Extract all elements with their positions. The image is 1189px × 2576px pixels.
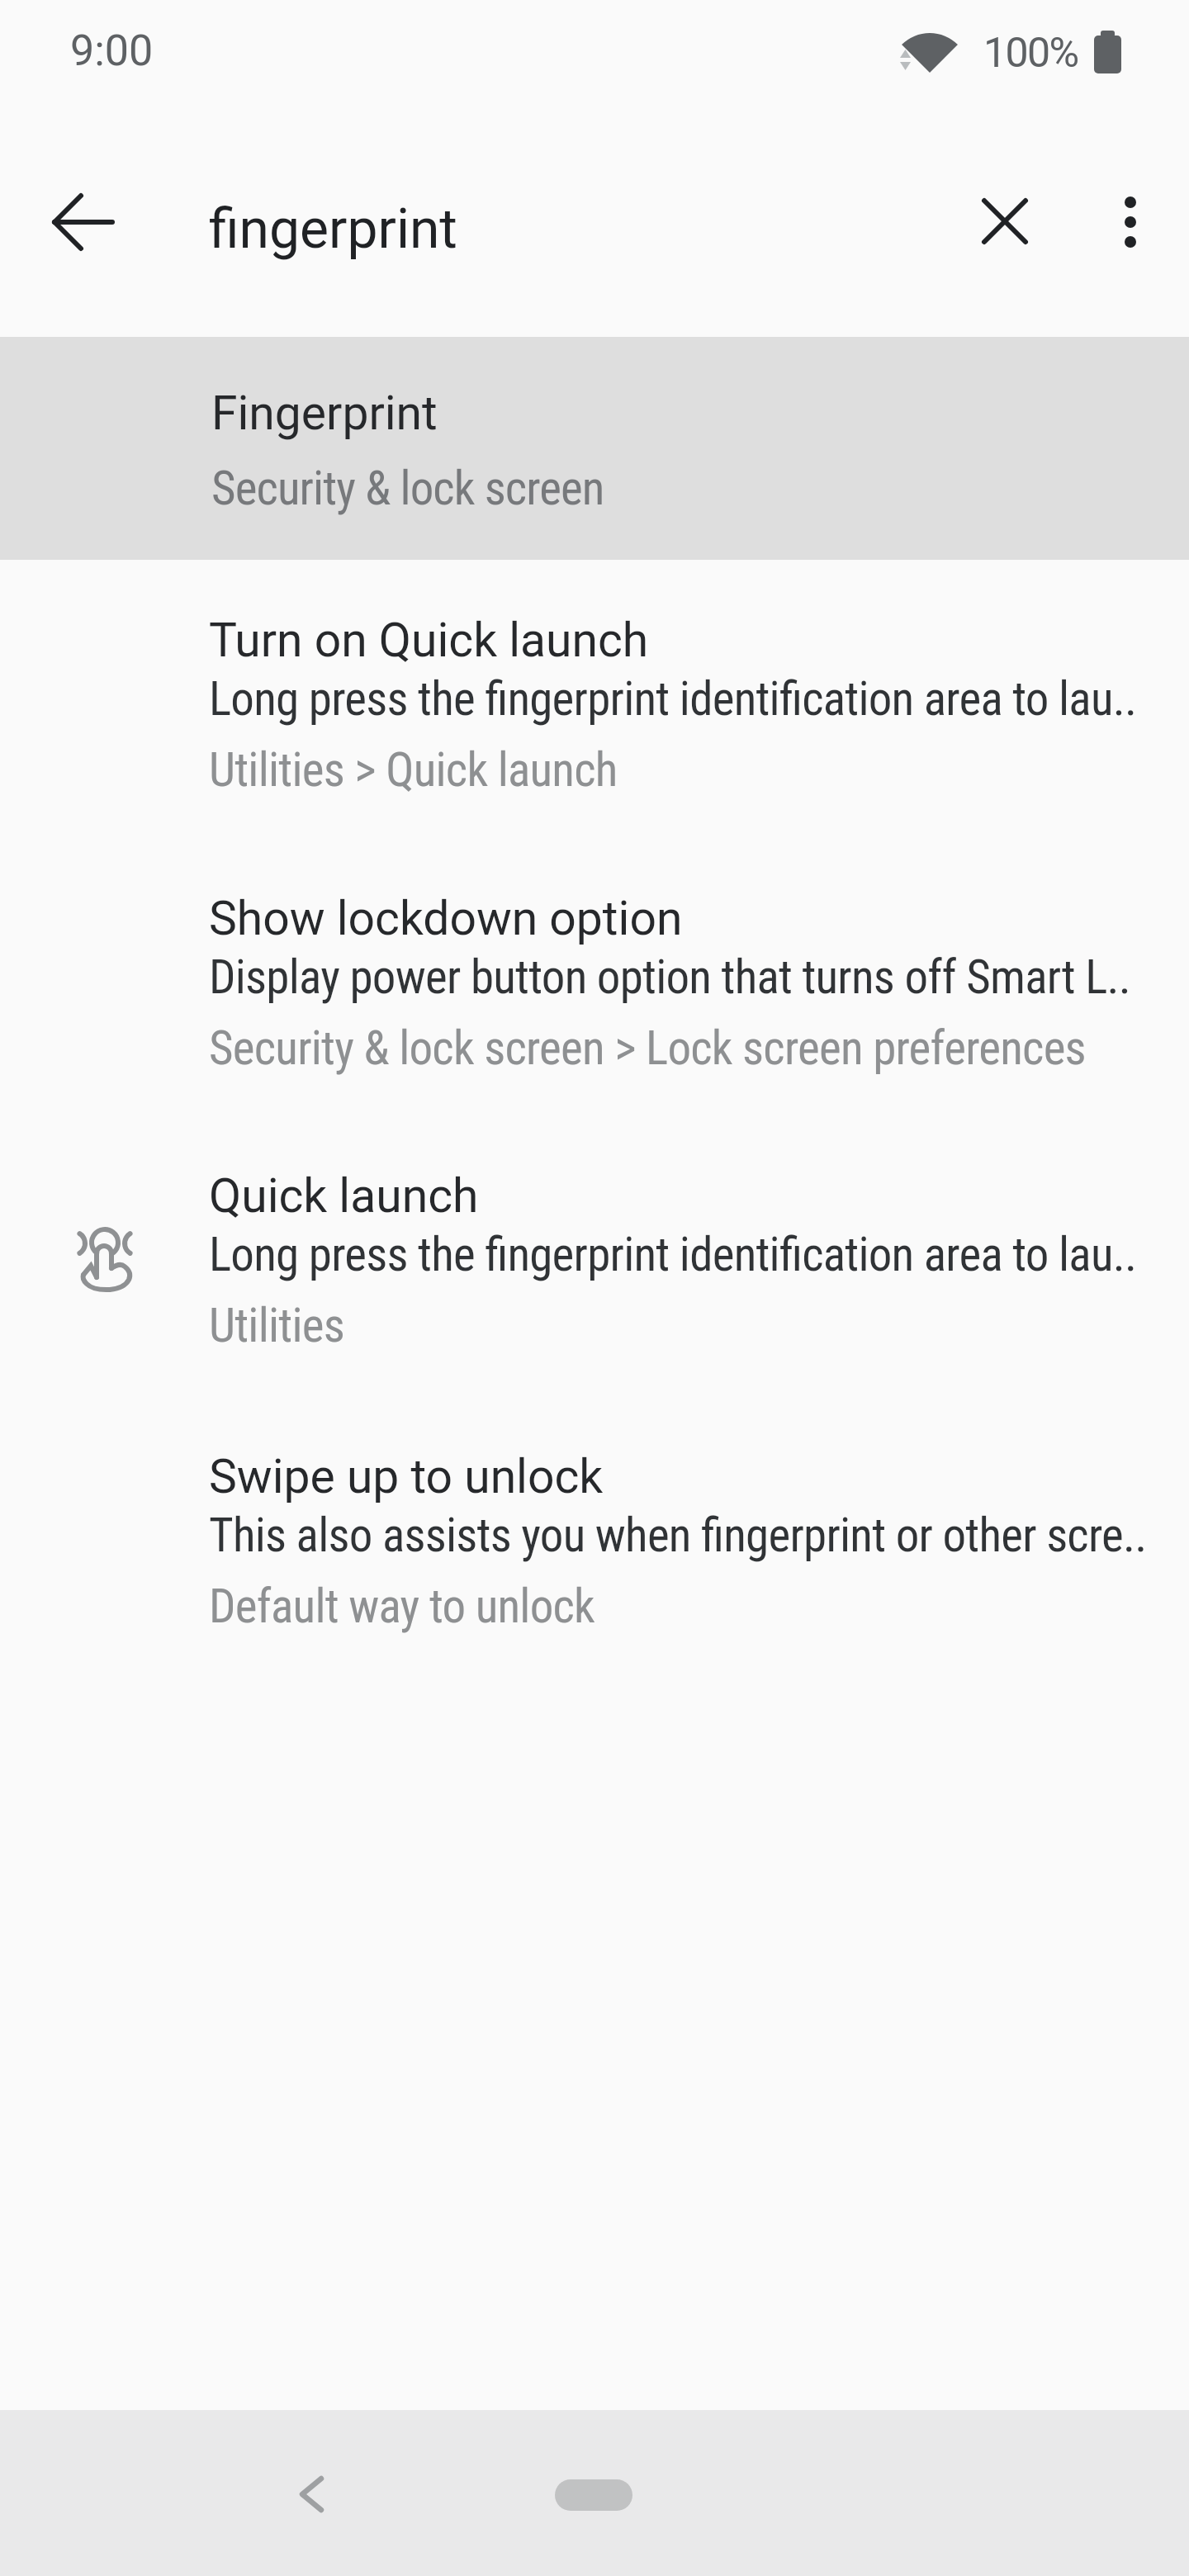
staticText: Utilities > Quick launch [209, 742, 618, 798]
button[interactable] [555, 2479, 632, 2511]
button[interactable] [33, 173, 132, 272]
button[interactable] [277, 2453, 347, 2536]
staticText: This also assists you when fingerprint o… [209, 1508, 1147, 1563]
staticText: Long press the fingerprint identificatio… [209, 671, 1137, 727]
button[interactable]: Swipe up to unlock [0, 1418, 1189, 1665]
staticText: 9:00 [70, 26, 154, 76]
staticText: Display power button option that turns o… [209, 949, 1131, 1005]
staticText: Default way to unlock [209, 1579, 595, 1634]
staticText: Security & lock screen > Lock screen pre… [209, 1020, 1086, 1076]
staticText: Quick launch [209, 1168, 479, 1224]
button[interactable]: Turn on Quick launch [0, 581, 1189, 829]
staticText: 100% [983, 29, 1078, 78]
staticText: Turn on Quick launch [209, 613, 649, 668]
button[interactable]: Quick launch [0, 1137, 1189, 1385]
button[interactable] [1081, 173, 1180, 272]
staticText: Utilities [209, 1298, 345, 1353]
button[interactable] [955, 172, 1054, 271]
staticText: Long press the fingerprint identificatio… [209, 1227, 1137, 1282]
staticText: Swipe up to unlock [209, 1449, 604, 1504]
staticText: Security & lock screen [211, 461, 604, 516]
staticText: Show lockdown option [209, 891, 683, 946]
staticText: fingerprint [209, 197, 457, 261]
button[interactable]: Fingerprint [0, 337, 1189, 560]
staticText: Fingerprint [211, 386, 438, 441]
button[interactable]: Show lockdown option [0, 859, 1189, 1107]
